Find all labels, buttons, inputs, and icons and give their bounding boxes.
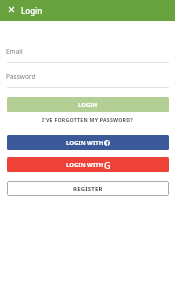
staticText: REGISTER <box>73 185 103 193</box>
staticText: LOGIN WITH <box>66 139 104 147</box>
staticText: LOGIN <box>78 101 98 109</box>
staticText: I'VE FORGOTTEN MY PASSWORD? <box>42 116 133 123</box>
staticText: G <box>104 159 111 171</box>
button[interactable]: LOGIN <box>7 97 169 112</box>
button[interactable]: LOGIN WITH <box>7 157 169 172</box>
button[interactable]: REGISTER <box>7 181 169 196</box>
button[interactable]: LOGIN WITH <box>7 135 169 150</box>
staticText: Password <box>6 72 36 81</box>
staticText: LOGIN WITH <box>66 161 104 169</box>
button[interactable]: Close <box>6 4 17 15</box>
button[interactable]: I'VE FORGOTTEN MY PASSWORD? <box>6 114 168 125</box>
staticText: Email <box>6 47 23 56</box>
staticText: Login <box>21 5 43 16</box>
